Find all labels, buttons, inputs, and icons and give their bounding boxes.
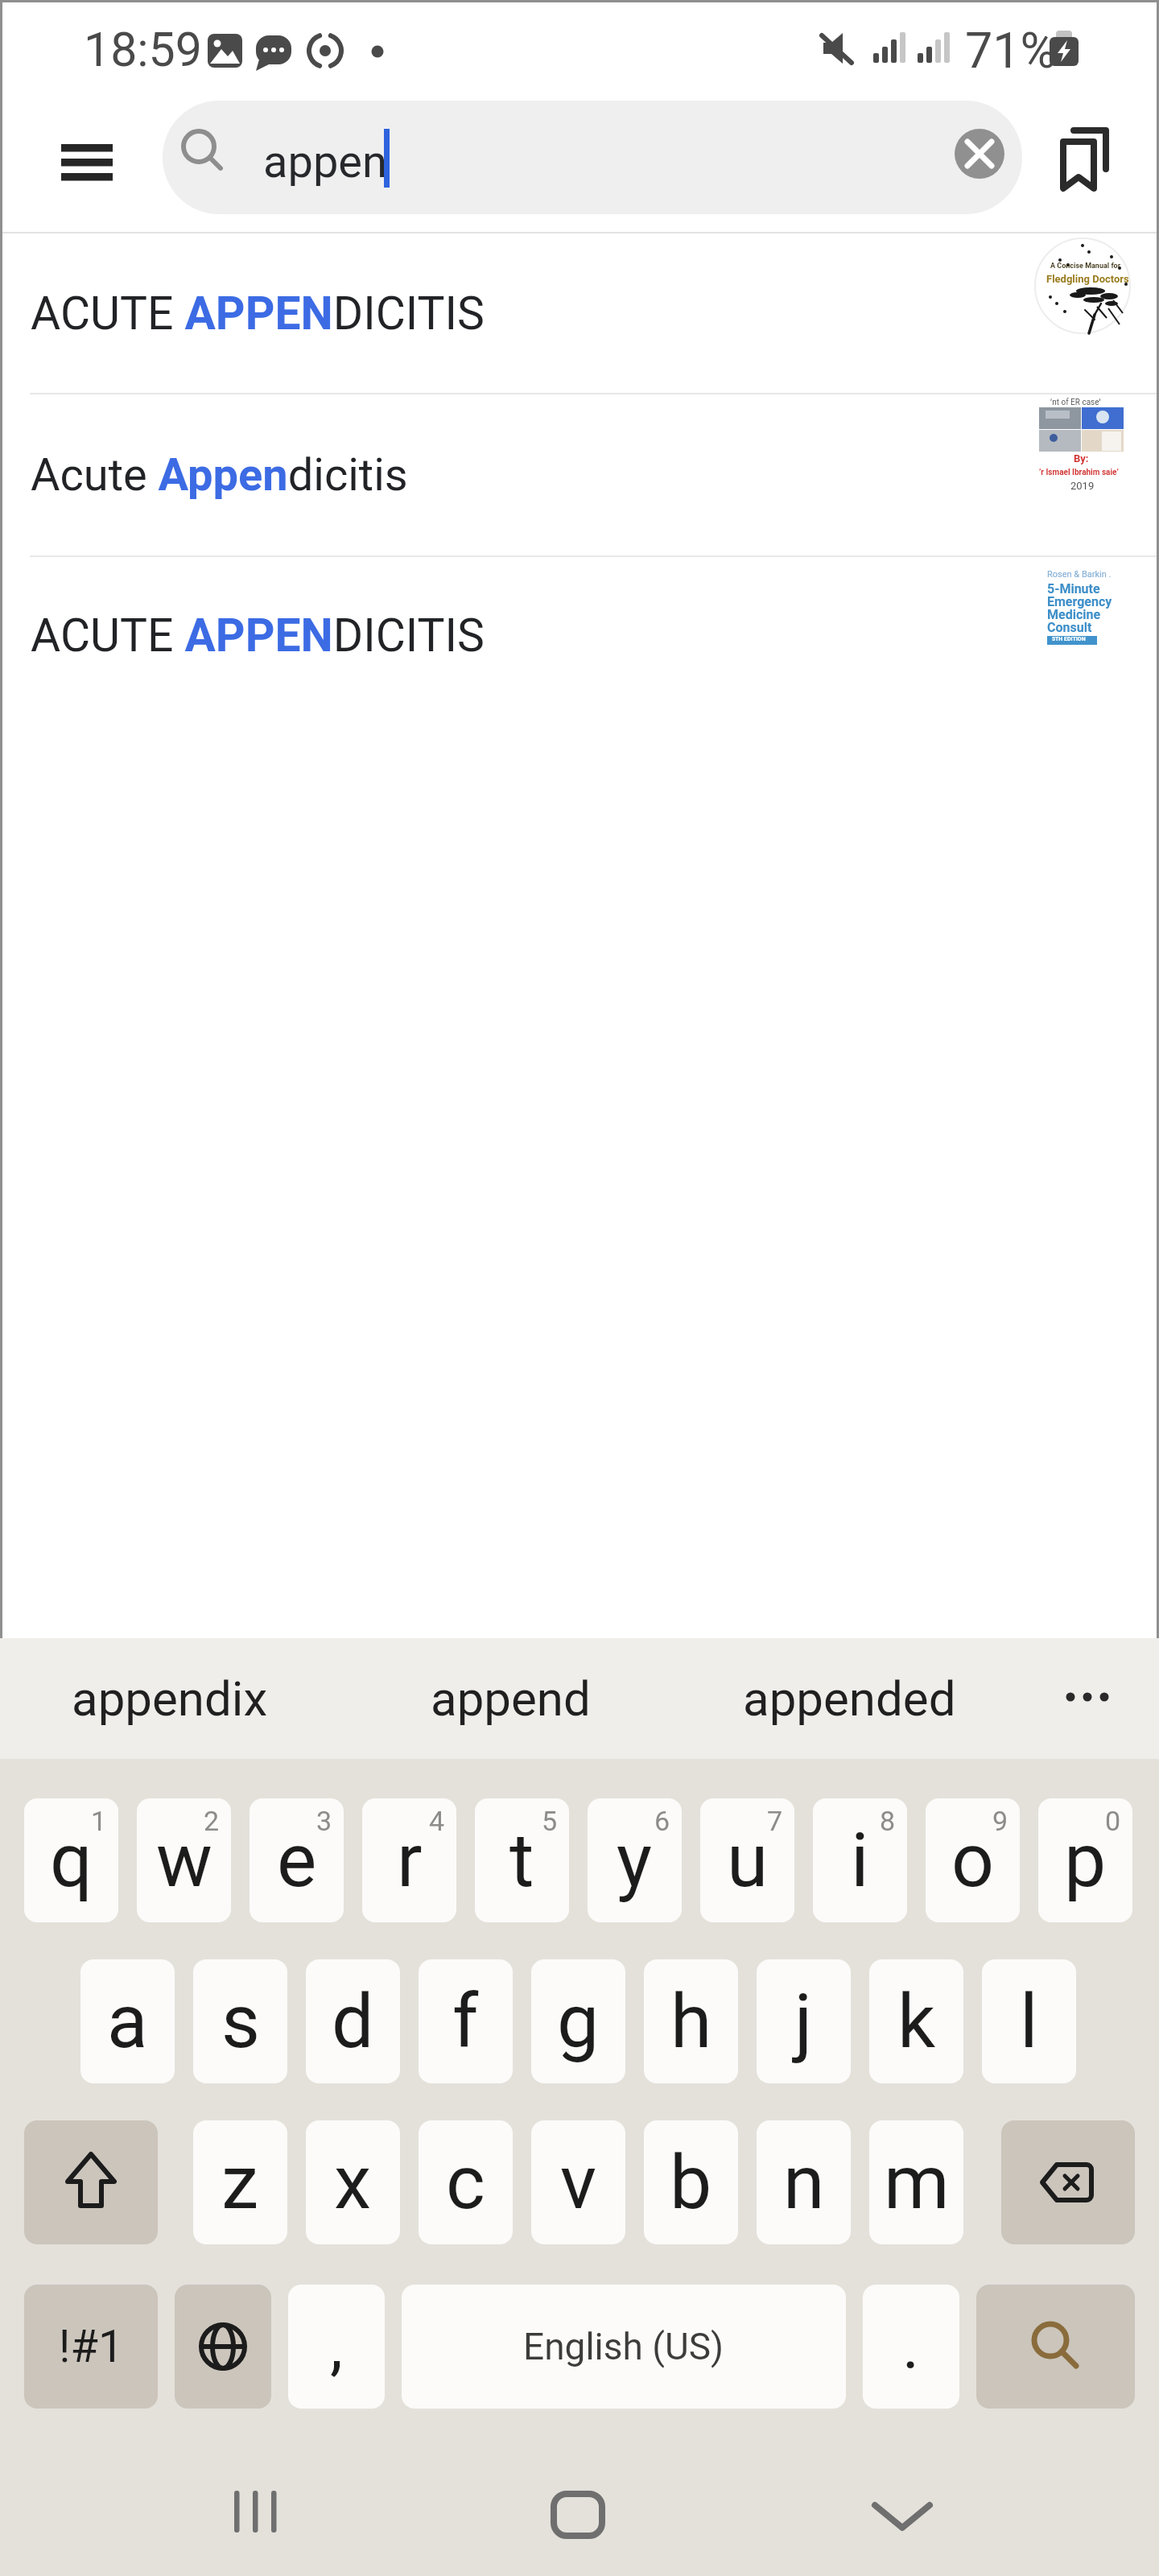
button[interactable]: z <box>193 2120 287 2244</box>
button[interactable]: x <box>306 2120 400 2244</box>
button[interactable]: f <box>419 1959 513 2083</box>
button[interactable]: a <box>80 1959 175 2083</box>
staticText: . <box>902 2309 920 2384</box>
staticText: 18:59 <box>84 22 202 77</box>
button[interactable]: ACUTE APPENDICITIS <box>0 233 1159 394</box>
staticText: 8 <box>880 1805 896 1837</box>
button[interactable]: !#1 <box>24 2285 158 2409</box>
staticText: 2019 <box>1070 480 1095 492</box>
button[interactable]: n <box>757 2120 851 2244</box>
button[interactable]: k <box>869 1959 963 2083</box>
staticText: appendix <box>72 1670 268 1727</box>
button[interactable]: p <box>1038 1798 1132 1922</box>
staticText: A Concise Manual for <box>1050 262 1120 270</box>
button[interactable] <box>955 129 1004 179</box>
staticText: c <box>446 2139 485 2227</box>
staticText: , <box>330 2309 343 2384</box>
button[interactable]: t <box>475 1798 569 1922</box>
button[interactable]: u <box>700 1798 794 1922</box>
staticText: z <box>221 2139 259 2227</box>
button[interactable]: b <box>644 2120 738 2244</box>
button[interactable]: h <box>644 1959 738 2083</box>
button[interactable]: j <box>757 1959 851 2083</box>
button[interactable]: o <box>926 1798 1020 1922</box>
button[interactable]: append <box>390 1638 631 1759</box>
button[interactable]: e <box>250 1798 344 1922</box>
staticText: a <box>107 1978 148 2066</box>
staticText: r <box>397 1817 423 1905</box>
staticText: s <box>221 1978 260 2066</box>
button[interactable]: g <box>531 1959 625 2083</box>
button[interactable]: ACUTE APPENDICITIS <box>0 555 1159 716</box>
staticText: i <box>851 1817 869 1905</box>
staticText: appen <box>263 135 387 188</box>
button[interactable]: m <box>869 2120 963 2244</box>
button[interactable]: , <box>288 2285 385 2409</box>
staticText: u <box>727 1817 769 1905</box>
staticText: 9 <box>992 1805 1008 1837</box>
staticText: l <box>1020 1978 1038 2066</box>
button[interactable]: s <box>193 1959 287 2083</box>
button[interactable]: q <box>24 1798 118 1922</box>
button[interactable]: appended <box>728 1638 970 1759</box>
staticText: e <box>277 1817 317 1905</box>
staticText: Acute Appendicitis <box>31 448 408 502</box>
staticText: Fledgling Doctors <box>1046 273 1129 285</box>
button[interactable]: r <box>362 1798 456 1922</box>
button[interactable]: y <box>588 1798 682 1922</box>
staticText: 7 <box>767 1805 783 1837</box>
staticText: 5-Minute <box>1047 581 1100 597</box>
staticText: b <box>670 2139 712 2227</box>
button[interactable] <box>209 2479 298 2557</box>
staticText: p <box>1064 1817 1107 1905</box>
staticText: 3 <box>316 1805 332 1837</box>
staticText: n <box>783 2139 825 2227</box>
staticText: 5 <box>542 1805 558 1837</box>
button[interactable]: l <box>982 1959 1076 2083</box>
button[interactable] <box>48 129 126 196</box>
button[interactable] <box>1030 1638 1159 1759</box>
staticText: Emergency <box>1047 594 1112 609</box>
staticText: ACUTE APPENDICITIS <box>31 609 485 663</box>
staticText: English (US) <box>523 2325 724 2368</box>
staticText: 6 <box>654 1805 670 1837</box>
button[interactable]: i <box>813 1798 907 1922</box>
button[interactable]: v <box>531 2120 625 2244</box>
staticText: ACUTE APPENDICITIS <box>31 287 485 341</box>
staticText: f <box>452 1978 479 2066</box>
button[interactable] <box>534 2479 623 2557</box>
staticText: j <box>794 1978 813 2066</box>
button[interactable]: appen <box>163 101 1022 214</box>
button[interactable]: c <box>419 2120 513 2244</box>
staticText: append <box>431 1670 591 1727</box>
staticText: Medicine <box>1047 607 1101 622</box>
staticText: 0 <box>1105 1805 1121 1837</box>
staticText: 5TH EDITION <box>1052 636 1086 642</box>
staticText: ʼr Ismael Ibrahim saieʼ <box>1039 468 1119 477</box>
staticText: 71% <box>965 22 1057 79</box>
button[interactable] <box>976 2285 1135 2409</box>
staticText: 1 <box>91 1805 107 1837</box>
staticText: k <box>897 1978 936 2066</box>
staticText: w <box>156 1817 212 1905</box>
button[interactable]: appendix <box>49 1638 291 1759</box>
button[interactable]: . <box>863 2285 959 2409</box>
staticText: Rosen & Barkin . <box>1047 569 1112 580</box>
button[interactable] <box>1001 2120 1135 2244</box>
staticText: Consult <box>1047 620 1092 635</box>
button[interactable] <box>858 2479 947 2557</box>
staticText: By: <box>1074 452 1089 464</box>
staticText: x <box>334 2139 372 2227</box>
button[interactable] <box>24 2120 158 2244</box>
button[interactable] <box>175 2285 271 2409</box>
staticText: v <box>560 2139 597 2227</box>
staticText: o <box>951 1817 995 1905</box>
button[interactable]: d <box>306 1959 400 2083</box>
button[interactable]: Acute Appendicitis <box>0 394 1159 555</box>
staticText: appended <box>743 1670 956 1727</box>
button[interactable]: w <box>137 1798 231 1922</box>
staticText: d <box>332 1978 374 2066</box>
staticText: m <box>884 2139 950 2227</box>
button[interactable] <box>1046 113 1135 201</box>
button[interactable]: English (US) <box>402 2285 846 2409</box>
